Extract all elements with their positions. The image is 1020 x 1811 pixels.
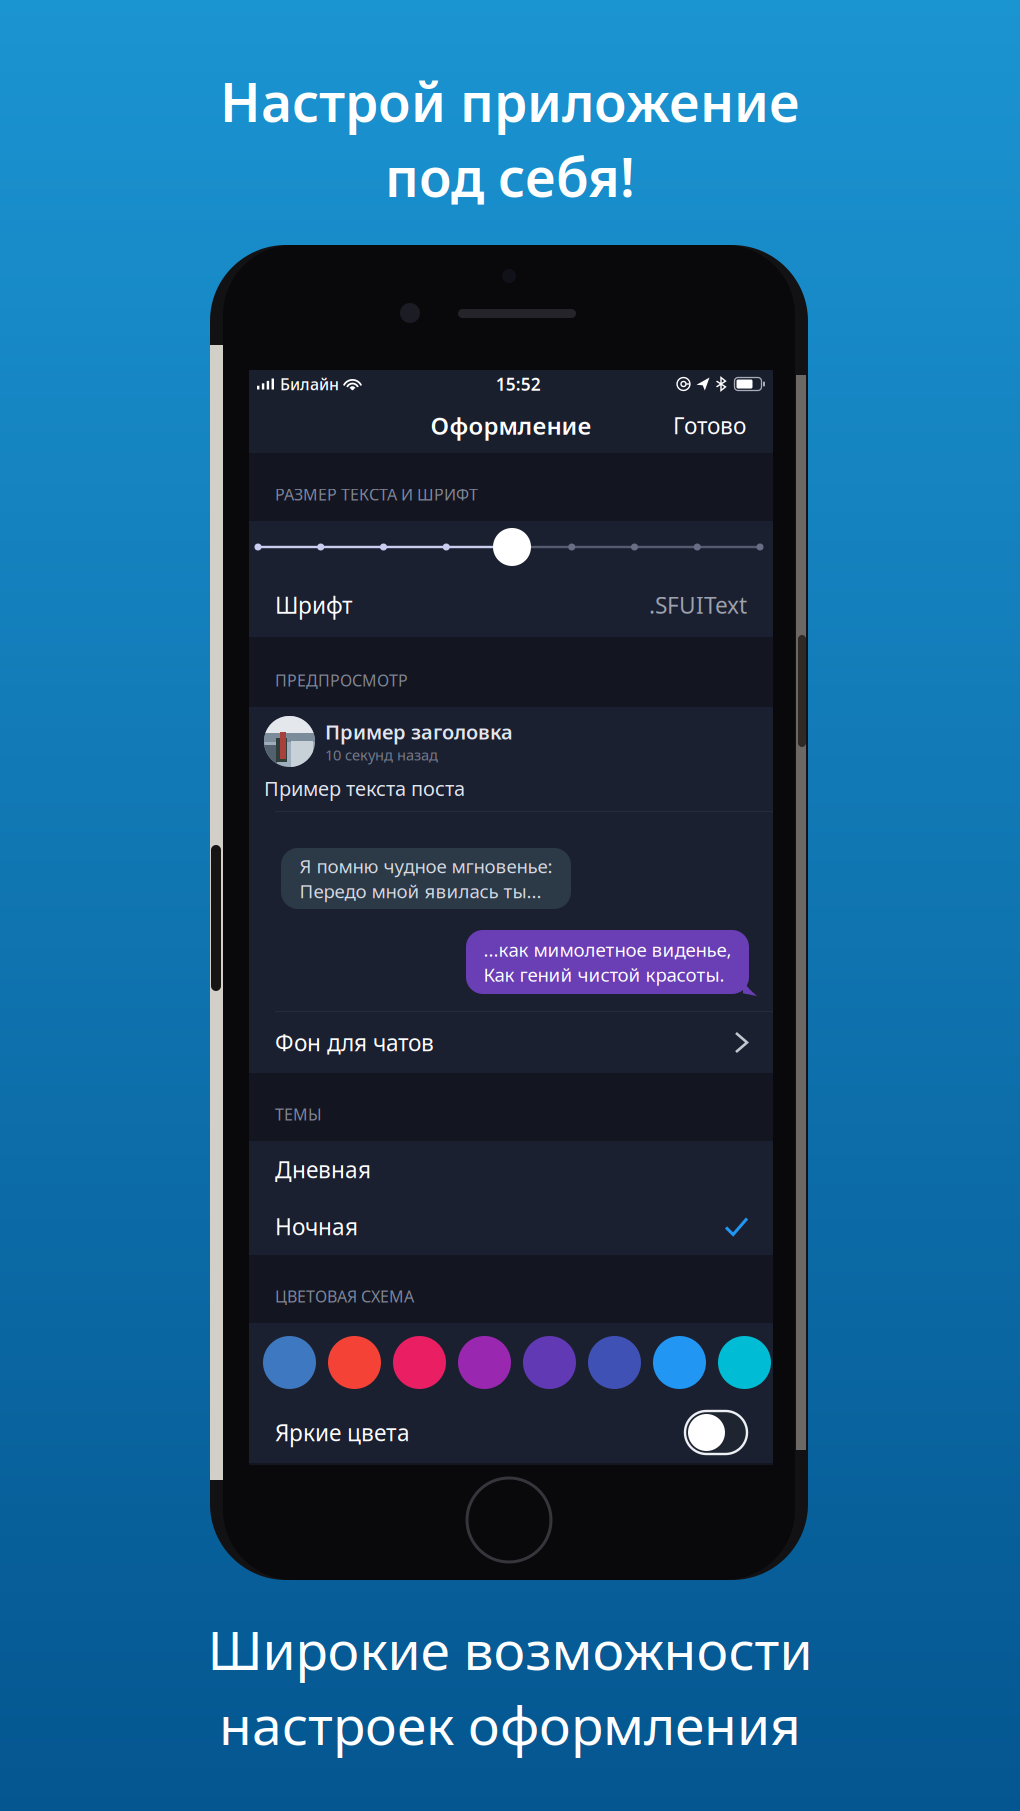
staticText: Шрифт [275, 590, 353, 620]
staticText: ТЕМЫ [275, 1104, 322, 1125]
staticText: Оформление [430, 410, 591, 441]
staticText: ...как мимолетное виденье, Как гений чис… [483, 937, 731, 987]
staticText: Настрой приложение [220, 66, 800, 137]
staticText: Фон для чатов [275, 1027, 434, 1057]
staticText: Пример текста поста [264, 775, 465, 802]
staticText: РАЗМЕР ТЕКСТА И ШРИФТ [275, 484, 478, 505]
button[interactable]: Ночная [249, 1198, 773, 1255]
button[interactable]: Цветовая схема 3 [393, 1336, 446, 1389]
staticText: Яркие цвета [275, 1417, 410, 1447]
button[interactable]: Фон для чатов [249, 1012, 773, 1073]
staticText: под себя! [385, 141, 635, 212]
staticText: Я помню чудное мгновенье: Передо мной яв… [299, 854, 552, 903]
button[interactable]: Цветовая схема 7 [653, 1336, 706, 1389]
button[interactable]: Шрифт [249, 573, 773, 637]
button[interactable]: Цветовая схема 8 [718, 1336, 771, 1389]
button[interactable]: Готово [659, 401, 773, 449]
staticText: 10 секунд назад [325, 745, 438, 764]
button[interactable]: Цветовая схема 5 [523, 1336, 576, 1389]
staticText: Широкие возможности [207, 1614, 812, 1685]
button[interactable]: Цветовая схема 1 [263, 1336, 316, 1389]
staticText: ПРЕДПРОСМОТР [275, 670, 408, 691]
staticText: Готово [673, 410, 746, 440]
staticText: ЦВЕТОВАЯ СХЕМА [275, 1286, 414, 1307]
button[interactable]: Цветовая схема 6 [588, 1336, 641, 1389]
staticText: .SFUIText [649, 590, 747, 620]
button[interactable]: Цветовая схема 2 [328, 1336, 381, 1389]
button[interactable]: Цветовая схема 4 [458, 1336, 511, 1389]
button[interactable]: Дневная [249, 1141, 773, 1198]
staticText: 15:52 [496, 372, 541, 395]
staticText: Пример заголовка [325, 718, 513, 745]
button[interactable]: Яркие цвета [685, 1411, 747, 1454]
staticText: Дневная [275, 1154, 371, 1184]
staticText: Ночная [275, 1211, 358, 1241]
staticText: настроек оформления [219, 1689, 801, 1760]
staticText: Билайн [280, 373, 339, 395]
